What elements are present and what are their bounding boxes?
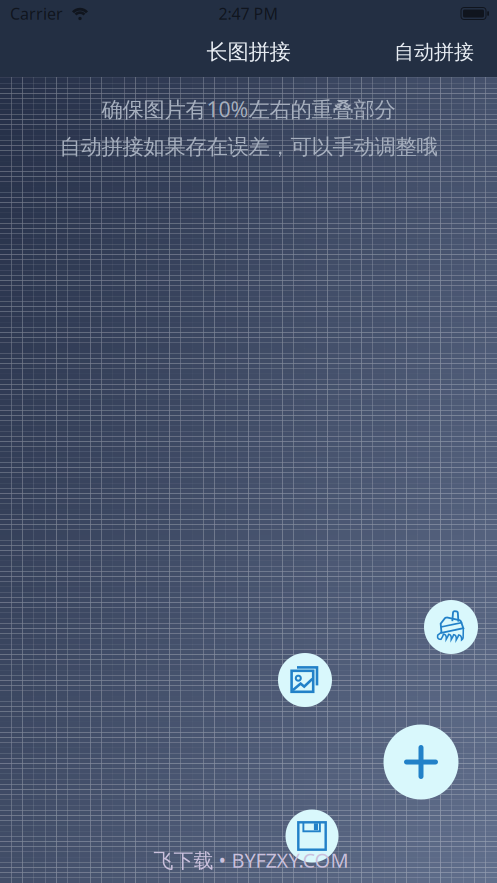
staticText: 确保图片有10%左右的重叠部分 — [101, 95, 395, 123]
staticText: Carrier — [10, 3, 63, 24]
staticText: 自动拼接如果存在误差，可以手动调整哦 — [59, 134, 437, 160]
button[interactable]: 自动拼接 — [382, 30, 486, 74]
staticText: 自动拼接 — [394, 40, 474, 64]
button[interactable]: Add — [383, 724, 458, 799]
button[interactable]: Photos — [278, 653, 332, 707]
staticText: 长图拼接 — [206, 39, 290, 65]
staticText: 飞下载 • BYFZXY.COM — [153, 847, 348, 873]
staticText: 2:47 PM — [218, 3, 278, 24]
button[interactable]: Clear — [424, 600, 478, 654]
button[interactable]: Save — [285, 809, 338, 862]
